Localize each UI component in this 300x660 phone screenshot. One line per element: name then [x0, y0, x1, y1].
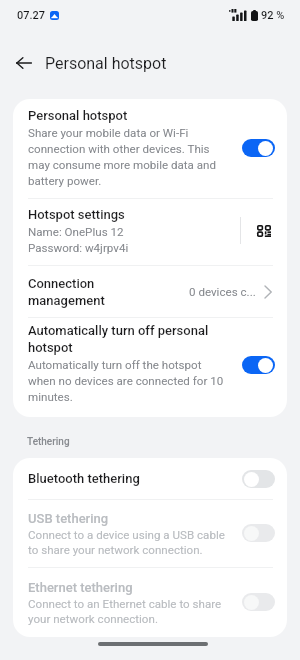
staticText: Personal hotspot — [28, 107, 128, 124]
staticText: Ethernet tethering — [28, 579, 133, 596]
button[interactable]: Ethernet tethering — [13, 568, 287, 637]
button[interactable]: Toggle — [242, 470, 275, 488]
staticText: 0 devices c... — [189, 285, 256, 299]
staticText: Name: OnePlus 12 — [28, 223, 124, 239]
staticText: Connect to an Ethernet cable to share yo… — [28, 596, 228, 626]
staticText: Personal hotspot — [45, 54, 167, 73]
staticText: Share your mobile data or Wi-Fi connecti… — [28, 124, 228, 188]
button[interactable]: Toggle — [242, 356, 275, 374]
staticText: 07.27 — [17, 9, 46, 22]
staticText: Automatically turn off the hotspot when … — [28, 356, 228, 404]
button[interactable]: Toggle — [242, 524, 275, 542]
staticText: Connection management — [28, 275, 138, 309]
staticText: Tethering — [27, 436, 70, 448]
staticText: USB tethering — [28, 510, 109, 527]
staticText: Password: w4jrpv4i — [28, 239, 129, 255]
staticText: Automatically turn off personal hotspot — [28, 322, 228, 356]
button[interactable]: Show QR code — [247, 214, 281, 248]
button[interactable]: Bluetooth tethering — [13, 458, 287, 499]
staticText: 92 % — [261, 9, 285, 22]
button[interactable]: Automatically turn off personal hotspot — [13, 318, 287, 417]
button[interactable]: Personal hotspot — [13, 99, 287, 198]
button[interactable]: Hotspot settings — [13, 199, 287, 265]
staticText: Connect to a device using a USB cable to… — [28, 527, 228, 557]
staticText: Bluetooth tethering — [28, 471, 242, 486]
button[interactable]: Connection management — [13, 266, 287, 317]
button[interactable]: Toggle — [242, 139, 275, 157]
staticText: Hotspot settings — [28, 206, 125, 223]
button[interactable]: USB tethering — [13, 500, 287, 567]
button[interactable]: Back — [8, 50, 39, 76]
button[interactable]: Toggle — [242, 593, 275, 611]
